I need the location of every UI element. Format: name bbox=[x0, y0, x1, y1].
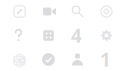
button[interactable]: Gem bbox=[93, 1, 122, 24]
staticText: 1 bbox=[100, 47, 111, 71]
button[interactable]: Help bbox=[6, 24, 35, 47]
button[interactable]: Settings bbox=[93, 24, 122, 47]
button[interactable]: Profile bbox=[64, 47, 93, 70]
button[interactable]: Four bbox=[64, 24, 93, 47]
button[interactable]: Video bbox=[35, 1, 64, 24]
staticText: 4 bbox=[71, 23, 82, 48]
button[interactable]: Emblem bbox=[6, 47, 35, 70]
button[interactable]: Open bbox=[6, 1, 35, 24]
button[interactable]: One bbox=[93, 47, 122, 70]
button[interactable]: Grid bbox=[35, 24, 64, 47]
button[interactable]: Done bbox=[35, 47, 64, 70]
button[interactable]: Search bbox=[64, 1, 93, 24]
